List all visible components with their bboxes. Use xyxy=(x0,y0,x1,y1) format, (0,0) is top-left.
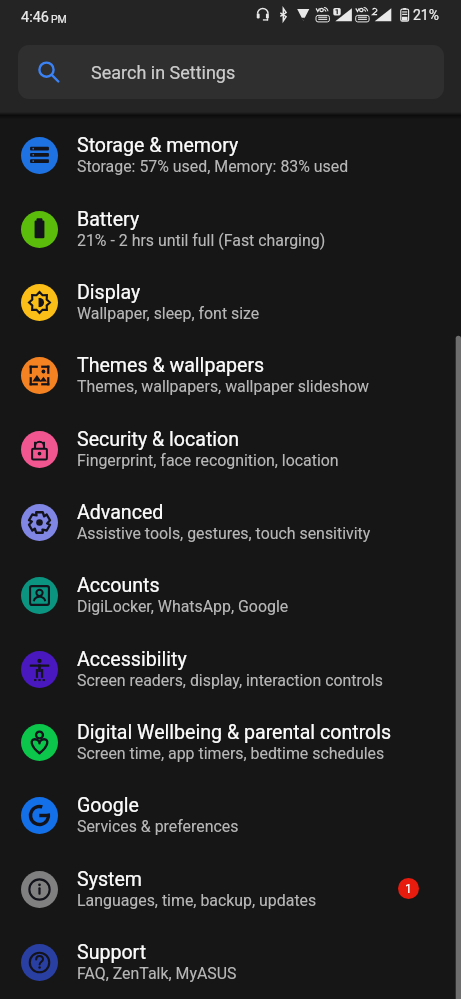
staticText: Accessibility xyxy=(77,648,187,671)
staticText: Storage: 57% used, Memory: 83% used xyxy=(77,157,349,176)
staticText: 21% - 2 hrs until full (Fast charging) xyxy=(77,231,326,250)
staticText: Storage & memory xyxy=(77,134,239,157)
button[interactable]: Themes & wallpapers xyxy=(0,338,461,411)
button[interactable]: Advanced xyxy=(0,485,461,558)
staticText: Digital Wellbeing & parental controls xyxy=(77,721,392,744)
button[interactable]: System xyxy=(0,852,461,925)
staticText: Advanced xyxy=(77,501,164,524)
staticText: Support xyxy=(77,941,147,964)
staticText: 21% xyxy=(413,7,439,23)
button[interactable]: Support xyxy=(0,925,461,998)
staticText: Assistive tools, gestures, touch sensiti… xyxy=(77,524,371,543)
button[interactable]: Accessibility xyxy=(0,632,461,705)
staticText: Languages, time, backup, updates xyxy=(77,891,317,910)
button[interactable]: Digital Wellbeing & parental controls xyxy=(0,705,461,778)
staticText: Wallpaper, sleep, font size xyxy=(77,304,260,323)
staticText: Themes & wallpapers xyxy=(77,354,265,377)
staticText: Accounts xyxy=(77,574,160,597)
button[interactable]: Google xyxy=(0,778,461,851)
staticText: Security & location xyxy=(77,428,240,451)
staticText: PM xyxy=(51,13,67,25)
staticText: Search in Settings xyxy=(91,62,236,83)
other: Search xyxy=(36,60,60,84)
staticText: Fingerprint, face recognition, location xyxy=(77,451,339,470)
staticText: Screen readers, display, interaction con… xyxy=(77,671,383,690)
staticText: Themes, wallpapers, wallpaper slideshow xyxy=(77,377,370,396)
staticText: FAQ, ZenTalk, MyASUS xyxy=(77,964,237,983)
staticText: Battery xyxy=(77,208,140,231)
staticText: Display xyxy=(77,281,141,304)
staticText: System xyxy=(77,868,142,891)
button[interactable]: Storage & memory xyxy=(0,118,461,191)
staticText: 1 xyxy=(405,882,412,896)
staticText: 4:46 xyxy=(21,9,49,26)
staticText: Google xyxy=(77,794,139,817)
button[interactable]: Display xyxy=(0,265,461,338)
button[interactable]: Accounts xyxy=(0,558,461,631)
staticText: DigiLocker, WhatsApp, Google xyxy=(77,597,289,616)
button[interactable]: Search xyxy=(18,45,444,99)
button[interactable]: Battery xyxy=(0,192,461,265)
staticText: Services & preferences xyxy=(77,817,239,836)
button[interactable]: Security & location xyxy=(0,412,461,485)
staticText: Screen time, app timers, bedtime schedul… xyxy=(77,744,385,763)
